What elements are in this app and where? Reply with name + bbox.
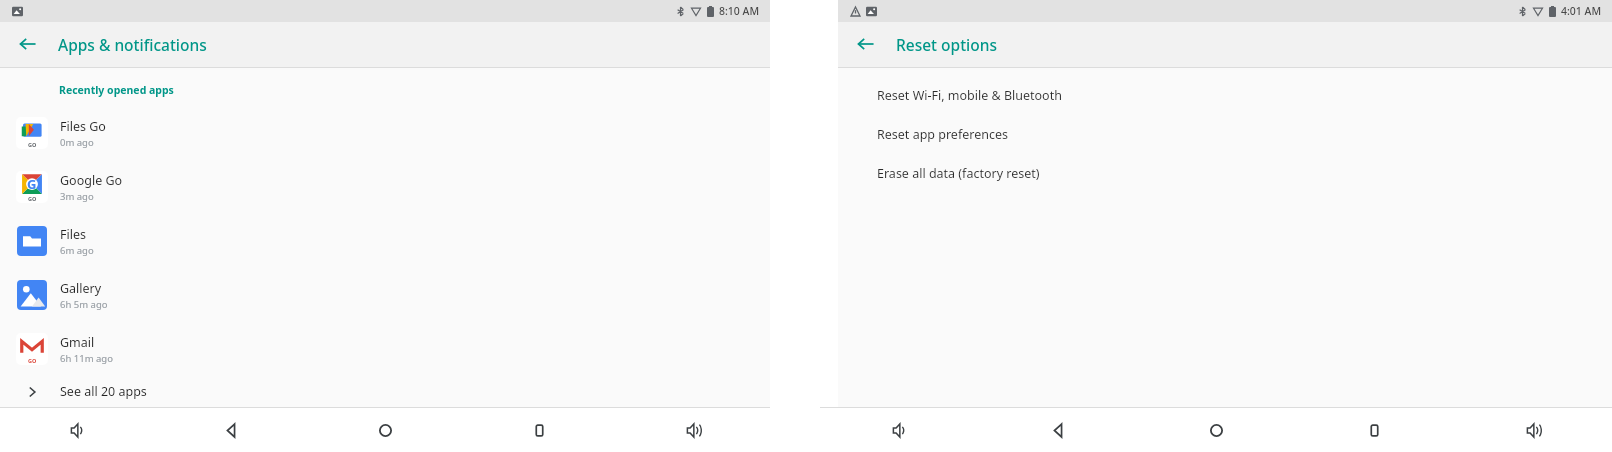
button[interactable]: Volume up — [671, 408, 715, 452]
staticText: GO — [28, 357, 37, 364]
staticText: Erase all data (factory reset) — [877, 165, 1040, 182]
staticText: Reset app preferences — [877, 126, 1008, 143]
button[interactable]: Recent apps — [517, 408, 561, 452]
button[interactable]: Back — [1036, 408, 1080, 452]
button[interactable]: Home — [1194, 408, 1238, 452]
staticText: 6m ago — [60, 244, 94, 257]
staticText: Gmail — [60, 334, 95, 351]
staticText: GO — [28, 141, 37, 148]
button[interactable]: Volume down — [55, 408, 99, 452]
staticText: 0m ago — [60, 136, 94, 149]
staticText: Reset options — [896, 34, 998, 55]
button[interactable]: Recent apps — [1352, 408, 1396, 452]
button[interactable]: G — [0, 160, 770, 214]
staticText: Files — [60, 226, 86, 243]
button[interactable]: Reset Wi-Fi, mobile & Bluetooth — [838, 76, 1612, 115]
staticText: 3m ago — [60, 190, 94, 203]
button[interactable]: GO — [0, 322, 770, 376]
button[interactable]: Navigate up — [6, 22, 50, 66]
staticText: Apps & notifications — [58, 34, 207, 55]
button[interactable]: Erase all data (factory reset) — [838, 154, 1612, 193]
button[interactable]: Gallery — [0, 268, 770, 322]
button[interactable]: Reset app preferences — [838, 115, 1612, 154]
staticText: Gallery — [60, 280, 102, 297]
button[interactable]: Home — [363, 408, 407, 452]
button[interactable]: Volume down — [877, 408, 921, 452]
staticText: G — [27, 175, 37, 193]
button[interactable]: See all 20 apps — [0, 376, 770, 407]
staticText: 6h 11m ago — [60, 352, 113, 365]
button[interactable]: Files — [0, 214, 770, 268]
staticText: See all 20 apps — [60, 383, 147, 400]
button[interactable]: GO — [0, 106, 770, 160]
staticText: Reset Wi-Fi, mobile & Bluetooth — [877, 87, 1062, 104]
staticText: 6h 5m ago — [60, 298, 108, 311]
staticText: GO — [28, 195, 37, 202]
staticText: Google Go — [60, 172, 123, 189]
staticText: 8:10 AM — [719, 4, 760, 18]
button[interactable]: Volume up — [1511, 408, 1555, 452]
staticText: 4:01 AM — [1561, 4, 1602, 18]
button[interactable]: Navigate up — [844, 22, 888, 66]
staticText: Recently opened apps — [59, 83, 174, 97]
button[interactable]: Back — [209, 408, 253, 452]
staticText: Files Go — [60, 118, 106, 135]
